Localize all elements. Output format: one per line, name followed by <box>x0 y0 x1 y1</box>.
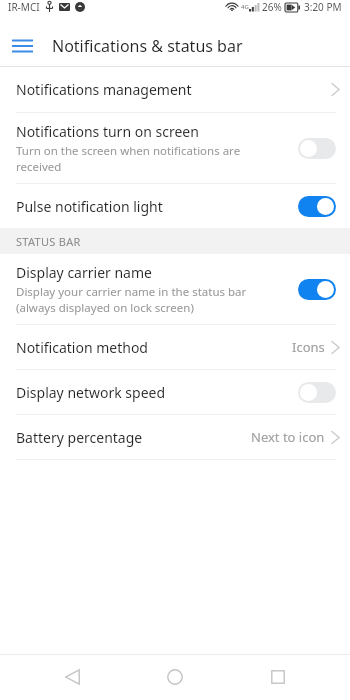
staticText: Notifications & status bar <box>52 35 243 57</box>
staticText: 3:20 PM <box>304 0 342 14</box>
staticText: Battery percentage <box>16 428 143 447</box>
staticText: Notification method <box>16 338 148 357</box>
button[interactable]: Off <box>298 382 336 403</box>
button[interactable]: Recents <box>247 655 309 699</box>
button[interactable]: Off <box>298 138 336 159</box>
staticText: Pulse notification light <box>16 197 163 216</box>
staticText: Next to icon <box>251 428 325 446</box>
button[interactable]: Notifications turn on screen <box>0 113 350 183</box>
staticText: Notifications management <box>16 80 192 99</box>
staticText: Icons <box>292 338 325 356</box>
button[interactable]: On <box>298 279 336 300</box>
button[interactable]: Display carrier name <box>0 254 350 324</box>
button[interactable]: Back <box>41 655 103 699</box>
staticText: Display your carrier name in the status … <box>16 284 247 315</box>
button[interactable]: Notification method <box>0 325 350 369</box>
staticText: Display carrier name <box>16 263 152 282</box>
button[interactable]: On <box>298 196 336 217</box>
button[interactable]: Home <box>144 655 206 699</box>
button[interactable]: Pulse notification light <box>0 184 350 228</box>
button[interactable]: Notifications management <box>0 67 350 112</box>
staticText: Display network speed <box>16 383 166 402</box>
staticText: Turn on the screen when notifications ar… <box>16 143 241 174</box>
staticText: Notifications turn on screen <box>16 122 199 141</box>
staticText: IR-MCI <box>8 0 40 14</box>
button[interactable]: Menu <box>0 26 44 66</box>
staticText: 26% <box>262 0 282 14</box>
button[interactable]: Display network speed <box>0 370 350 414</box>
staticText: 4G <box>241 3 249 11</box>
button[interactable]: Battery percentage <box>0 415 350 459</box>
staticText: STATUS BAR <box>16 234 81 249</box>
